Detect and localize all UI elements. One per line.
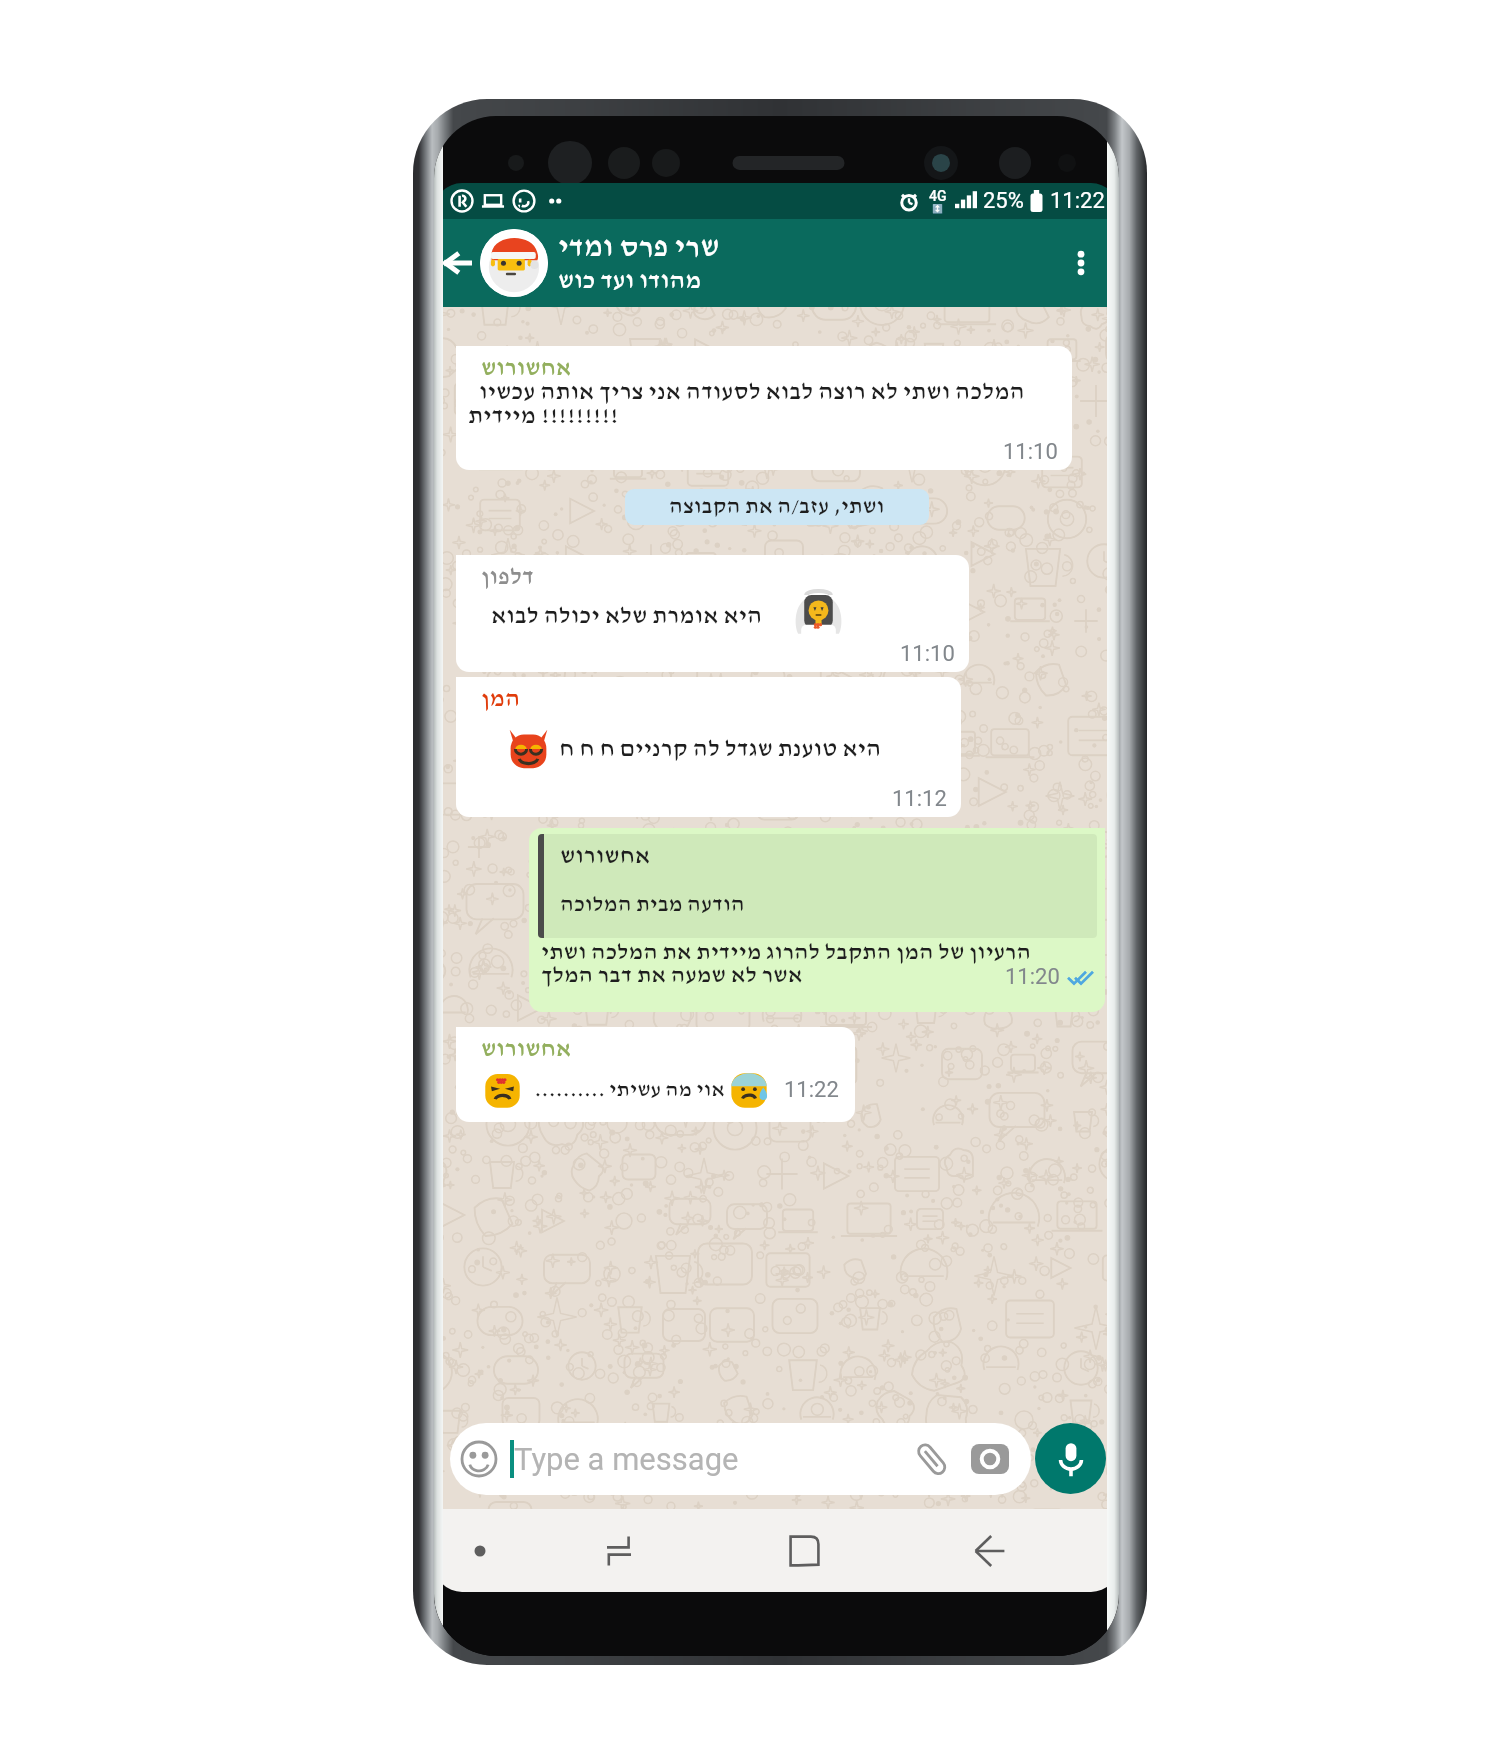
- staticText: אשר לא שמעה את דבר המלך: [541, 964, 803, 987]
- button[interactable]: Emoji: [450, 1423, 1031, 1495]
- staticText: היא טוענת שגדל לה קרניים ח ח ח: [559, 737, 882, 761]
- button[interactable]: אחשורוש: [456, 346, 1072, 470]
- other: Camera: [971, 1441, 1009, 1477]
- staticText: .......... אוי מה עשיתי: [534, 1080, 725, 1101]
- staticText: מהודו ועד כוש: [558, 268, 702, 293]
- button[interactable]: דלפון: [456, 555, 969, 672]
- staticText: דלפון: [481, 565, 534, 589]
- staticText: 11:10: [1003, 439, 1058, 465]
- staticText: הודעה מבית המלוכה: [560, 894, 745, 916]
- staticText: אחשורוש: [481, 1037, 572, 1061]
- staticText: ↕: [932, 204, 944, 215]
- staticText: אחשורוש: [481, 356, 572, 380]
- staticText: 11:22: [784, 1077, 839, 1103]
- button[interactable]: More options: [1055, 237, 1107, 289]
- button[interactable]: המן: [456, 677, 961, 817]
- staticText: Type a message: [514, 1441, 739, 1477]
- button[interactable]: Back: [897, 1509, 1083, 1592]
- button[interactable]: Voice message: [1035, 1423, 1106, 1494]
- staticText: 4G: [929, 188, 947, 204]
- staticText: המן: [481, 687, 521, 711]
- staticText: הרעיון של המן התקבל להרוג מיידית את המלכ…: [541, 941, 1032, 964]
- other: Attach: [913, 1440, 951, 1478]
- button[interactable]: אחשורוש: [529, 828, 1105, 1012]
- staticText: מיידית !!!!!!!!!: [468, 404, 619, 428]
- staticText: 11:22: [1050, 188, 1105, 214]
- button[interactable]: Recent apps: [526, 1509, 711, 1592]
- staticText: ושתי, עזב/ה את הקבוצה: [669, 496, 885, 518]
- button[interactable]: ושתי, עזב/ה את הקבוצה: [625, 489, 929, 525]
- staticText: היא אומרת שלא יכולה לבוא: [491, 604, 763, 628]
- staticText: 11:12: [892, 786, 947, 812]
- other: Emoji: [460, 1440, 498, 1478]
- staticText: אחשורוש: [560, 844, 651, 868]
- staticText: 25%: [983, 188, 1024, 214]
- button[interactable]: Back: [436, 241, 480, 285]
- button[interactable]: אחשורוש: [456, 1027, 855, 1122]
- staticText: 11:10: [900, 641, 955, 667]
- button[interactable]: Home: [711, 1509, 897, 1592]
- staticText: שרי פרס ומדי: [558, 233, 720, 263]
- staticText: 11:20: [1005, 964, 1060, 990]
- staticText: המלכה ושתי לא רוצה לבוא לסעודה אני צריך …: [479, 380, 1025, 404]
